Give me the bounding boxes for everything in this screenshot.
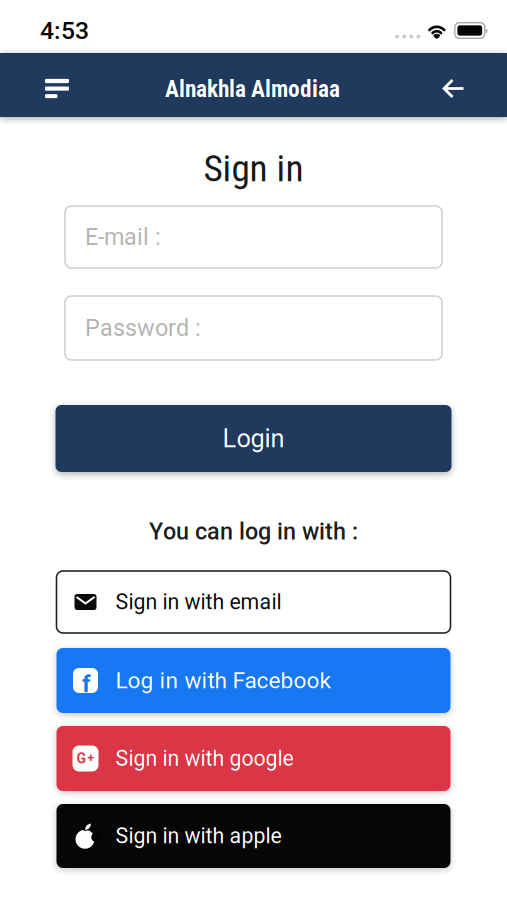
button[interactable]: G [56, 726, 450, 791]
staticText: Sign in [203, 147, 303, 190]
staticText: G [76, 750, 86, 767]
button[interactable]: Login [55, 405, 451, 472]
staticText: Sign in with email [115, 589, 281, 614]
button[interactable]: Sign in with email [56, 571, 450, 633]
button[interactable]: Menu [0, 79, 69, 98]
staticText: Login [222, 424, 284, 453]
button[interactable]: f [56, 648, 450, 713]
button[interactable]: E-mail : [65, 206, 442, 268]
staticText: E-mail : [85, 223, 161, 251]
staticText: Alnakhla Almodiaa [165, 75, 340, 103]
staticText: Log in with Facebook [115, 667, 330, 694]
staticText: Sign in with google [115, 746, 293, 771]
staticText: f [82, 670, 91, 698]
staticText: + [87, 751, 94, 766]
button[interactable]: Back [442, 77, 507, 99]
staticText: You can log in with : [149, 518, 358, 545]
staticText: Password : [85, 314, 201, 342]
staticText: 4:53 [40, 16, 89, 45]
button[interactable]: Password : [65, 296, 442, 360]
staticText: Sign in with apple [115, 823, 281, 848]
button[interactable]: Sign in with apple [56, 804, 450, 868]
